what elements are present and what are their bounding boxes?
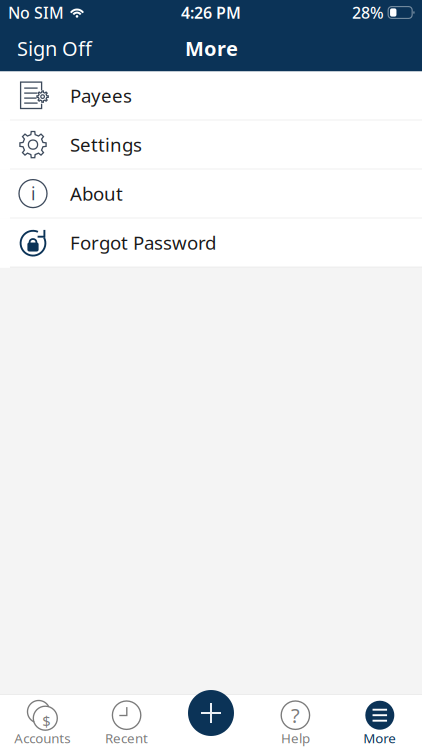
button[interactable]: Sign Off	[0, 26, 102, 70]
staticText: 28%	[352, 2, 384, 23]
staticText: Payees	[70, 83, 132, 108]
button[interactable]: $	[0, 695, 84, 750]
staticText: Forgot Password	[70, 230, 216, 255]
button[interactable]: Forgot Password	[0, 218, 422, 267]
staticText: Accounts	[14, 729, 70, 747]
button[interactable]: Add	[185, 687, 237, 739]
staticText: Help	[281, 729, 310, 747]
staticText: 4:26 PM	[181, 2, 241, 23]
staticText: More	[363, 729, 396, 747]
staticText: Settings	[70, 132, 142, 157]
staticText: Sign Off	[17, 35, 92, 62]
staticText: ?	[291, 702, 300, 728]
button[interactable]: Recent	[84, 695, 169, 750]
button[interactable]: i	[0, 169, 422, 218]
staticText: About	[70, 181, 123, 206]
button[interactable]: More	[338, 695, 422, 750]
staticText: More	[185, 35, 238, 62]
staticText: Recent	[105, 729, 148, 747]
button[interactable]: ?	[253, 695, 338, 750]
button[interactable]: Settings	[0, 120, 422, 169]
staticText: No SIM	[8, 2, 64, 23]
button[interactable]: Payees	[0, 71, 422, 120]
staticText: $	[42, 711, 50, 731]
staticText: i	[31, 182, 35, 205]
